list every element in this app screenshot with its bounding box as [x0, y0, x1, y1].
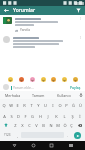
staticText: X: [21, 123, 24, 128]
staticText: Kullanıcı: [57, 93, 72, 98]
staticText: Yorumlar: [13, 7, 36, 14]
staticText: N: [49, 123, 53, 128]
staticText: Ç: [70, 123, 73, 128]
button[interactable]: Ö: [61, 120, 68, 130]
button[interactable]: Y: [35, 100, 42, 110]
staticText: E: [16, 103, 19, 108]
button[interactable]: Merhaba: [0, 91, 25, 99]
button[interactable]: Emoji: [61, 76, 67, 82]
staticText: K: [55, 114, 58, 119]
button[interactable]: Emoji: [40, 76, 46, 82]
staticText: W: [9, 103, 13, 108]
button[interactable]: Ş: [68, 112, 76, 120]
button[interactable]: İ: [76, 112, 84, 120]
staticText: T: [30, 103, 33, 108]
staticText: Ü: [79, 103, 82, 108]
button[interactable]: Z: [11, 120, 19, 130]
staticText: D: [17, 114, 20, 119]
staticText: Ğ: [72, 103, 75, 108]
staticText: İ: [79, 114, 81, 119]
button[interactable]: Kullanıcı: [51, 91, 77, 99]
button[interactable]: X: [19, 120, 26, 130]
staticText: H: [39, 114, 42, 119]
button[interactable]: Emoji: [18, 76, 24, 82]
button[interactable]: Ana ekran: [30, 142, 37, 149]
staticText: Yorum ekle...: [13, 85, 34, 90]
button[interactable]: G: [29, 112, 36, 120]
button[interactable]: B: [40, 120, 47, 130]
button[interactable]: W: [7, 100, 14, 110]
staticText: Q: [2, 103, 6, 108]
staticText: A: [3, 114, 6, 119]
button[interactable]: L: [60, 112, 68, 120]
button[interactable]: P: [63, 100, 70, 110]
button[interactable]: Diğer: [79, 36, 82, 39]
button[interactable]: J: [44, 112, 52, 120]
button[interactable]: Emoji: [7, 76, 13, 82]
staticText: M: [56, 123, 60, 128]
staticText: I: [52, 103, 54, 108]
button[interactable]: H: [36, 112, 44, 120]
button[interactable]: Son uygulamalar: [48, 142, 55, 149]
button[interactable]: Yorum ekle...: [11, 85, 67, 90]
staticText: Ş: [71, 114, 74, 119]
button[interactable]: S: [8, 112, 15, 120]
button[interactable]: Sırala: [75, 7, 82, 14]
button[interactable]: Yanıtla: [20, 28, 30, 32]
staticText: U: [44, 103, 47, 108]
button[interactable]: Ç: [68, 120, 75, 130]
button[interactable]: F: [22, 112, 29, 120]
button[interactable]: A: [1, 112, 8, 120]
button[interactable]: Beğen: [15, 29, 18, 32]
button[interactable]: Gönder: [74, 132, 81, 139]
staticText: ?123: [4, 133, 11, 137]
staticText: V: [35, 123, 38, 128]
button[interactable]: V: [33, 120, 40, 130]
button[interactable]: T: [28, 100, 35, 110]
button[interactable]: M: [54, 120, 61, 130]
staticText: Ö: [63, 123, 67, 128]
button[interactable]: Sesle yaz: [77, 91, 85, 99]
staticText: .: [67, 133, 68, 138]
button[interactable]: C: [26, 120, 33, 130]
staticText: J: [47, 114, 49, 119]
button[interactable]: Beğen: [0, 15, 85, 34]
staticText: F: [24, 114, 27, 119]
button[interactable]: Shift: [1, 120, 11, 130]
button[interactable]: Sil: [75, 120, 84, 130]
button[interactable]: Tamam: [25, 91, 51, 99]
button[interactable]: ?123: [1, 130, 14, 140]
button[interactable]: Ğ: [70, 100, 77, 110]
button[interactable]: Diğer: [0, 34, 85, 51]
button[interactable]: Paylaş: [69, 85, 82, 90]
button[interactable]: Ü: [77, 100, 84, 110]
button[interactable]: Emoji: [72, 76, 78, 82]
button[interactable]: Q: [1, 100, 7, 110]
staticText: B: [42, 123, 45, 128]
button[interactable]: U: [42, 100, 49, 110]
staticText: R: [23, 103, 26, 108]
button[interactable]: I: [49, 100, 56, 110]
staticText: Tamam: [32, 93, 45, 98]
button[interactable]: E: [14, 100, 21, 110]
button[interactable]: Emoji: [29, 76, 35, 82]
staticText: C: [28, 123, 31, 128]
button[interactable]: K: [52, 112, 60, 120]
button[interactable]: ,: [14, 130, 21, 140]
staticText: Y: [37, 103, 40, 108]
staticText: 20:08: [75, 1, 84, 6]
button[interactable]: Geri: [3, 7, 10, 14]
button[interactable]: O: [56, 100, 63, 110]
staticText: O: [58, 103, 62, 108]
button[interactable]: N: [47, 120, 54, 130]
button[interactable]: Diğer: [79, 17, 82, 20]
staticText: Z: [14, 123, 17, 128]
button[interactable]: Emoji: [50, 76, 56, 82]
button[interactable]: Geri: [11, 142, 18, 149]
button[interactable]: R: [21, 100, 28, 110]
button[interactable]: Klavye: [67, 142, 74, 149]
button[interactable]: D: [15, 112, 22, 120]
staticText: P: [65, 103, 68, 108]
